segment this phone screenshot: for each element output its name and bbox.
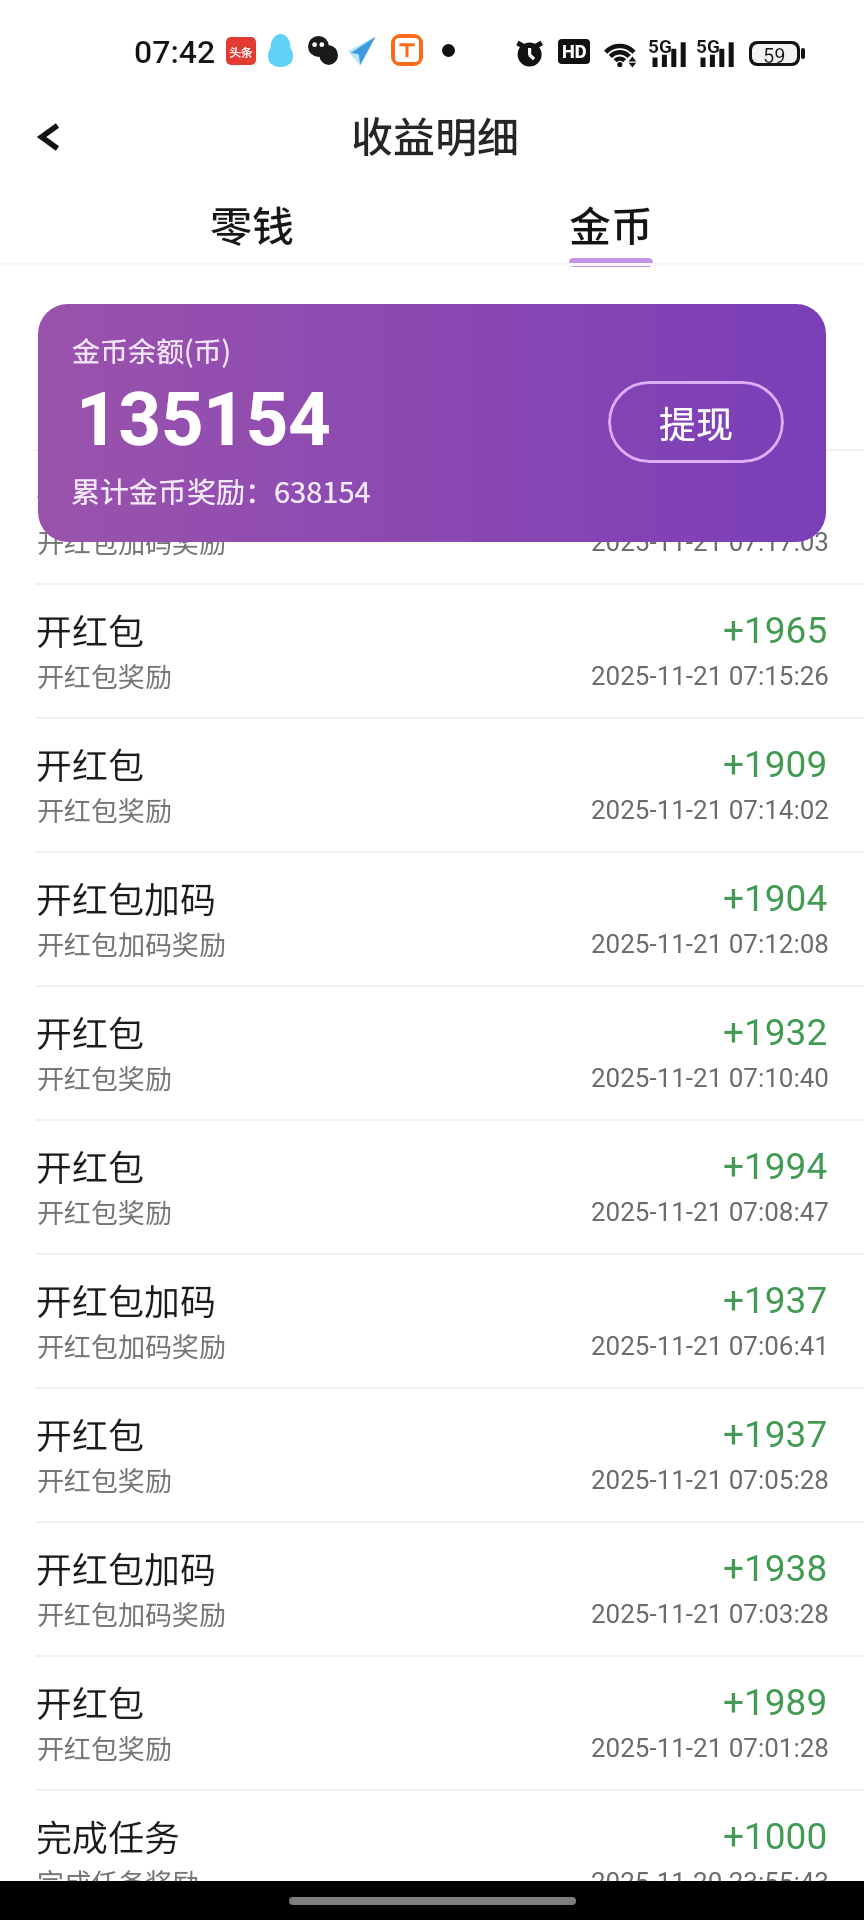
staticText: 2025-11-21 07:12:08 <box>591 929 829 959</box>
staticText: 2025-11-21 07:15:26 <box>591 661 829 691</box>
button[interactable]: 金币 <box>491 186 731 266</box>
staticText: 135154 <box>76 376 331 463</box>
staticText: 开红包加码奖励 <box>37 1594 226 1633</box>
staticText: 收益明细 <box>351 104 520 165</box>
staticText: 开红包奖励 <box>37 1058 172 1097</box>
staticText: 开红包加码 <box>36 469 217 521</box>
staticText: +1965 <box>723 609 828 652</box>
button[interactable]: 开红包 <box>0 1119 864 1253</box>
button[interactable]: 开红包 <box>0 717 864 851</box>
staticText: 5G <box>696 35 720 57</box>
button[interactable]: 开红包加码 <box>0 1521 864 1655</box>
button[interactable]: 开红包加码 <box>0 449 864 583</box>
staticText: 开红包加码 <box>36 1273 217 1325</box>
staticText: 2025-11-21 07:08:47 <box>591 1197 829 1227</box>
staticText: +1938 <box>723 1547 828 1590</box>
staticText: 开红包奖励 <box>37 790 172 829</box>
button[interactable]: 开红包加码 <box>0 1253 864 1387</box>
button[interactable]: 零钱 <box>132 186 372 266</box>
staticText: 2025-11-21 07:01:28 <box>591 1733 829 1763</box>
staticText: 2025-11-21 07:10:40 <box>591 1063 829 1093</box>
button[interactable]: 完成任务 <box>0 1789 864 1920</box>
staticText: 开红包奖励 <box>37 1192 172 1231</box>
staticText: +1937 <box>723 1413 828 1456</box>
staticText: 完成任务 <box>36 1809 181 1861</box>
staticText: +1000 <box>723 1815 828 1858</box>
button[interactable]: 开红包 <box>0 583 864 717</box>
button[interactable]: 开红包 <box>0 1655 864 1789</box>
staticText: 累计金币奖励：638154 <box>71 469 371 511</box>
staticText: 开红包奖励 <box>37 1728 172 1767</box>
staticText: 零钱 <box>210 193 295 254</box>
staticText: 开红包 <box>36 603 145 655</box>
staticText: +1937 <box>723 1279 828 1322</box>
staticText: +1989 <box>723 1681 828 1724</box>
staticText: 59 <box>763 44 786 63</box>
staticText: 2025-11-21 07:14:02 <box>591 795 829 825</box>
staticText: 提现 <box>659 395 733 449</box>
staticText: 开红包加码奖励 <box>37 522 226 561</box>
staticText: 2025-11-21 07:06:41 <box>591 1331 829 1361</box>
button[interactable]: Back <box>17 105 81 169</box>
staticText: 开红包加码奖励 <box>37 924 226 963</box>
staticText: 07:42 <box>134 33 216 71</box>
staticText: 开红包加码奖励 <box>37 1326 226 1365</box>
staticText: +1909 <box>723 743 828 786</box>
staticText: 开红包 <box>36 1005 145 1057</box>
staticText: 开红包奖励 <box>37 1460 172 1499</box>
staticText: 金币余额(币) <box>72 330 231 371</box>
staticText: 开红包 <box>36 737 145 789</box>
button[interactable]: 开红包加码 <box>0 851 864 985</box>
button[interactable]: 开红包 <box>0 985 864 1119</box>
staticText: 开红包 <box>36 1139 145 1191</box>
staticText: 头条 <box>229 43 254 60</box>
staticText: 开红包加码 <box>36 1541 217 1593</box>
staticText: 开红包加码 <box>36 871 217 923</box>
staticText: +1904 <box>723 877 828 920</box>
staticText: 完成任务奖励 <box>37 1862 199 1901</box>
staticText: 2025-11-21 07:05:28 <box>591 1465 829 1495</box>
button[interactable]: 提现 <box>608 381 784 463</box>
staticText: +1932 <box>723 1011 828 1054</box>
staticText: 开红包 <box>36 1407 145 1459</box>
staticText: 5G <box>648 35 672 57</box>
staticText: 2025-11-21 07:03:28 <box>591 1599 829 1629</box>
staticText: +1971 <box>723 475 828 518</box>
staticText: 开红包 <box>36 1675 145 1727</box>
staticText: 开红包奖励 <box>37 656 172 695</box>
staticText: HD <box>562 41 587 62</box>
staticText: 金币 <box>569 193 654 254</box>
staticText: 2025-11-21 07:17:03 <box>591 527 829 557</box>
staticText: +1994 <box>723 1145 828 1188</box>
button[interactable]: 金币余额(币) <box>38 304 826 542</box>
staticText: 2025-11-20 23:55:43 <box>591 1867 829 1897</box>
button[interactable]: 开红包 <box>0 1387 864 1521</box>
